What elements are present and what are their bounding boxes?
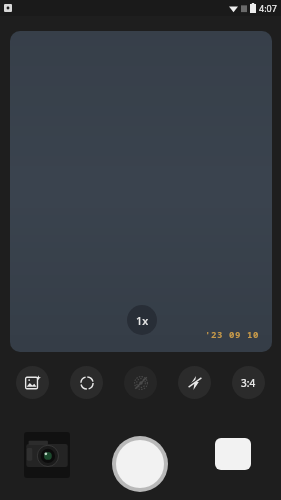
button[interactable]: Switch camera [215,438,251,470]
button[interactable]: Motion off [124,366,157,399]
staticText: 1x [136,313,149,328]
button[interactable]: Shutter [112,436,168,492]
button[interactable]: 1x [127,305,157,335]
button[interactable]: Timer [70,366,103,399]
button[interactable]: Aspect ratio 3 by 4 [232,366,265,399]
staticText: 3:4 [241,376,256,390]
button[interactable]: Photo enhance [16,366,49,399]
staticText: '23 09 10 [205,328,260,340]
button[interactable]: Gallery [24,432,70,478]
staticText: 4:07 [259,2,277,14]
button[interactable]: Flash off [178,366,211,399]
